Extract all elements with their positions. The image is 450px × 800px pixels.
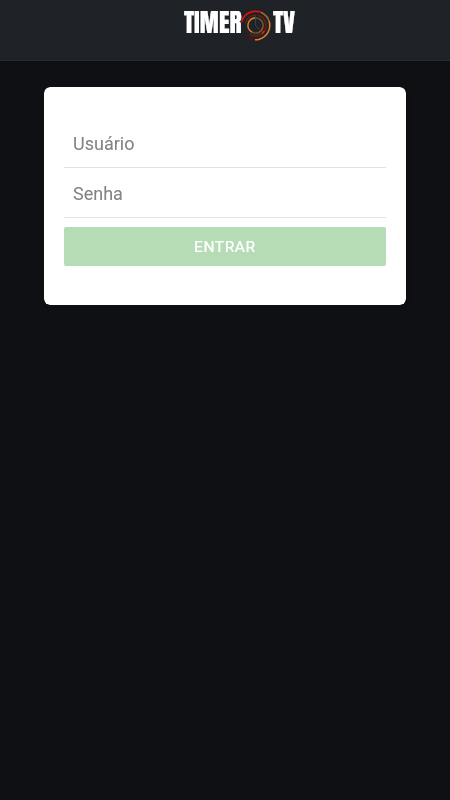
staticText: TIMER: [184, 3, 242, 41]
button[interactable]: Senha: [64, 168, 386, 218]
staticText: Senha: [73, 183, 123, 204]
button[interactable]: ENTRAR: [64, 227, 386, 266]
button[interactable]: Usuário: [64, 104, 386, 168]
staticText: ENTRAR: [194, 238, 256, 256]
staticText: Usuário: [73, 133, 135, 154]
staticText: TV: [273, 3, 296, 41]
other: TIMER TV: [184, 3, 296, 41]
